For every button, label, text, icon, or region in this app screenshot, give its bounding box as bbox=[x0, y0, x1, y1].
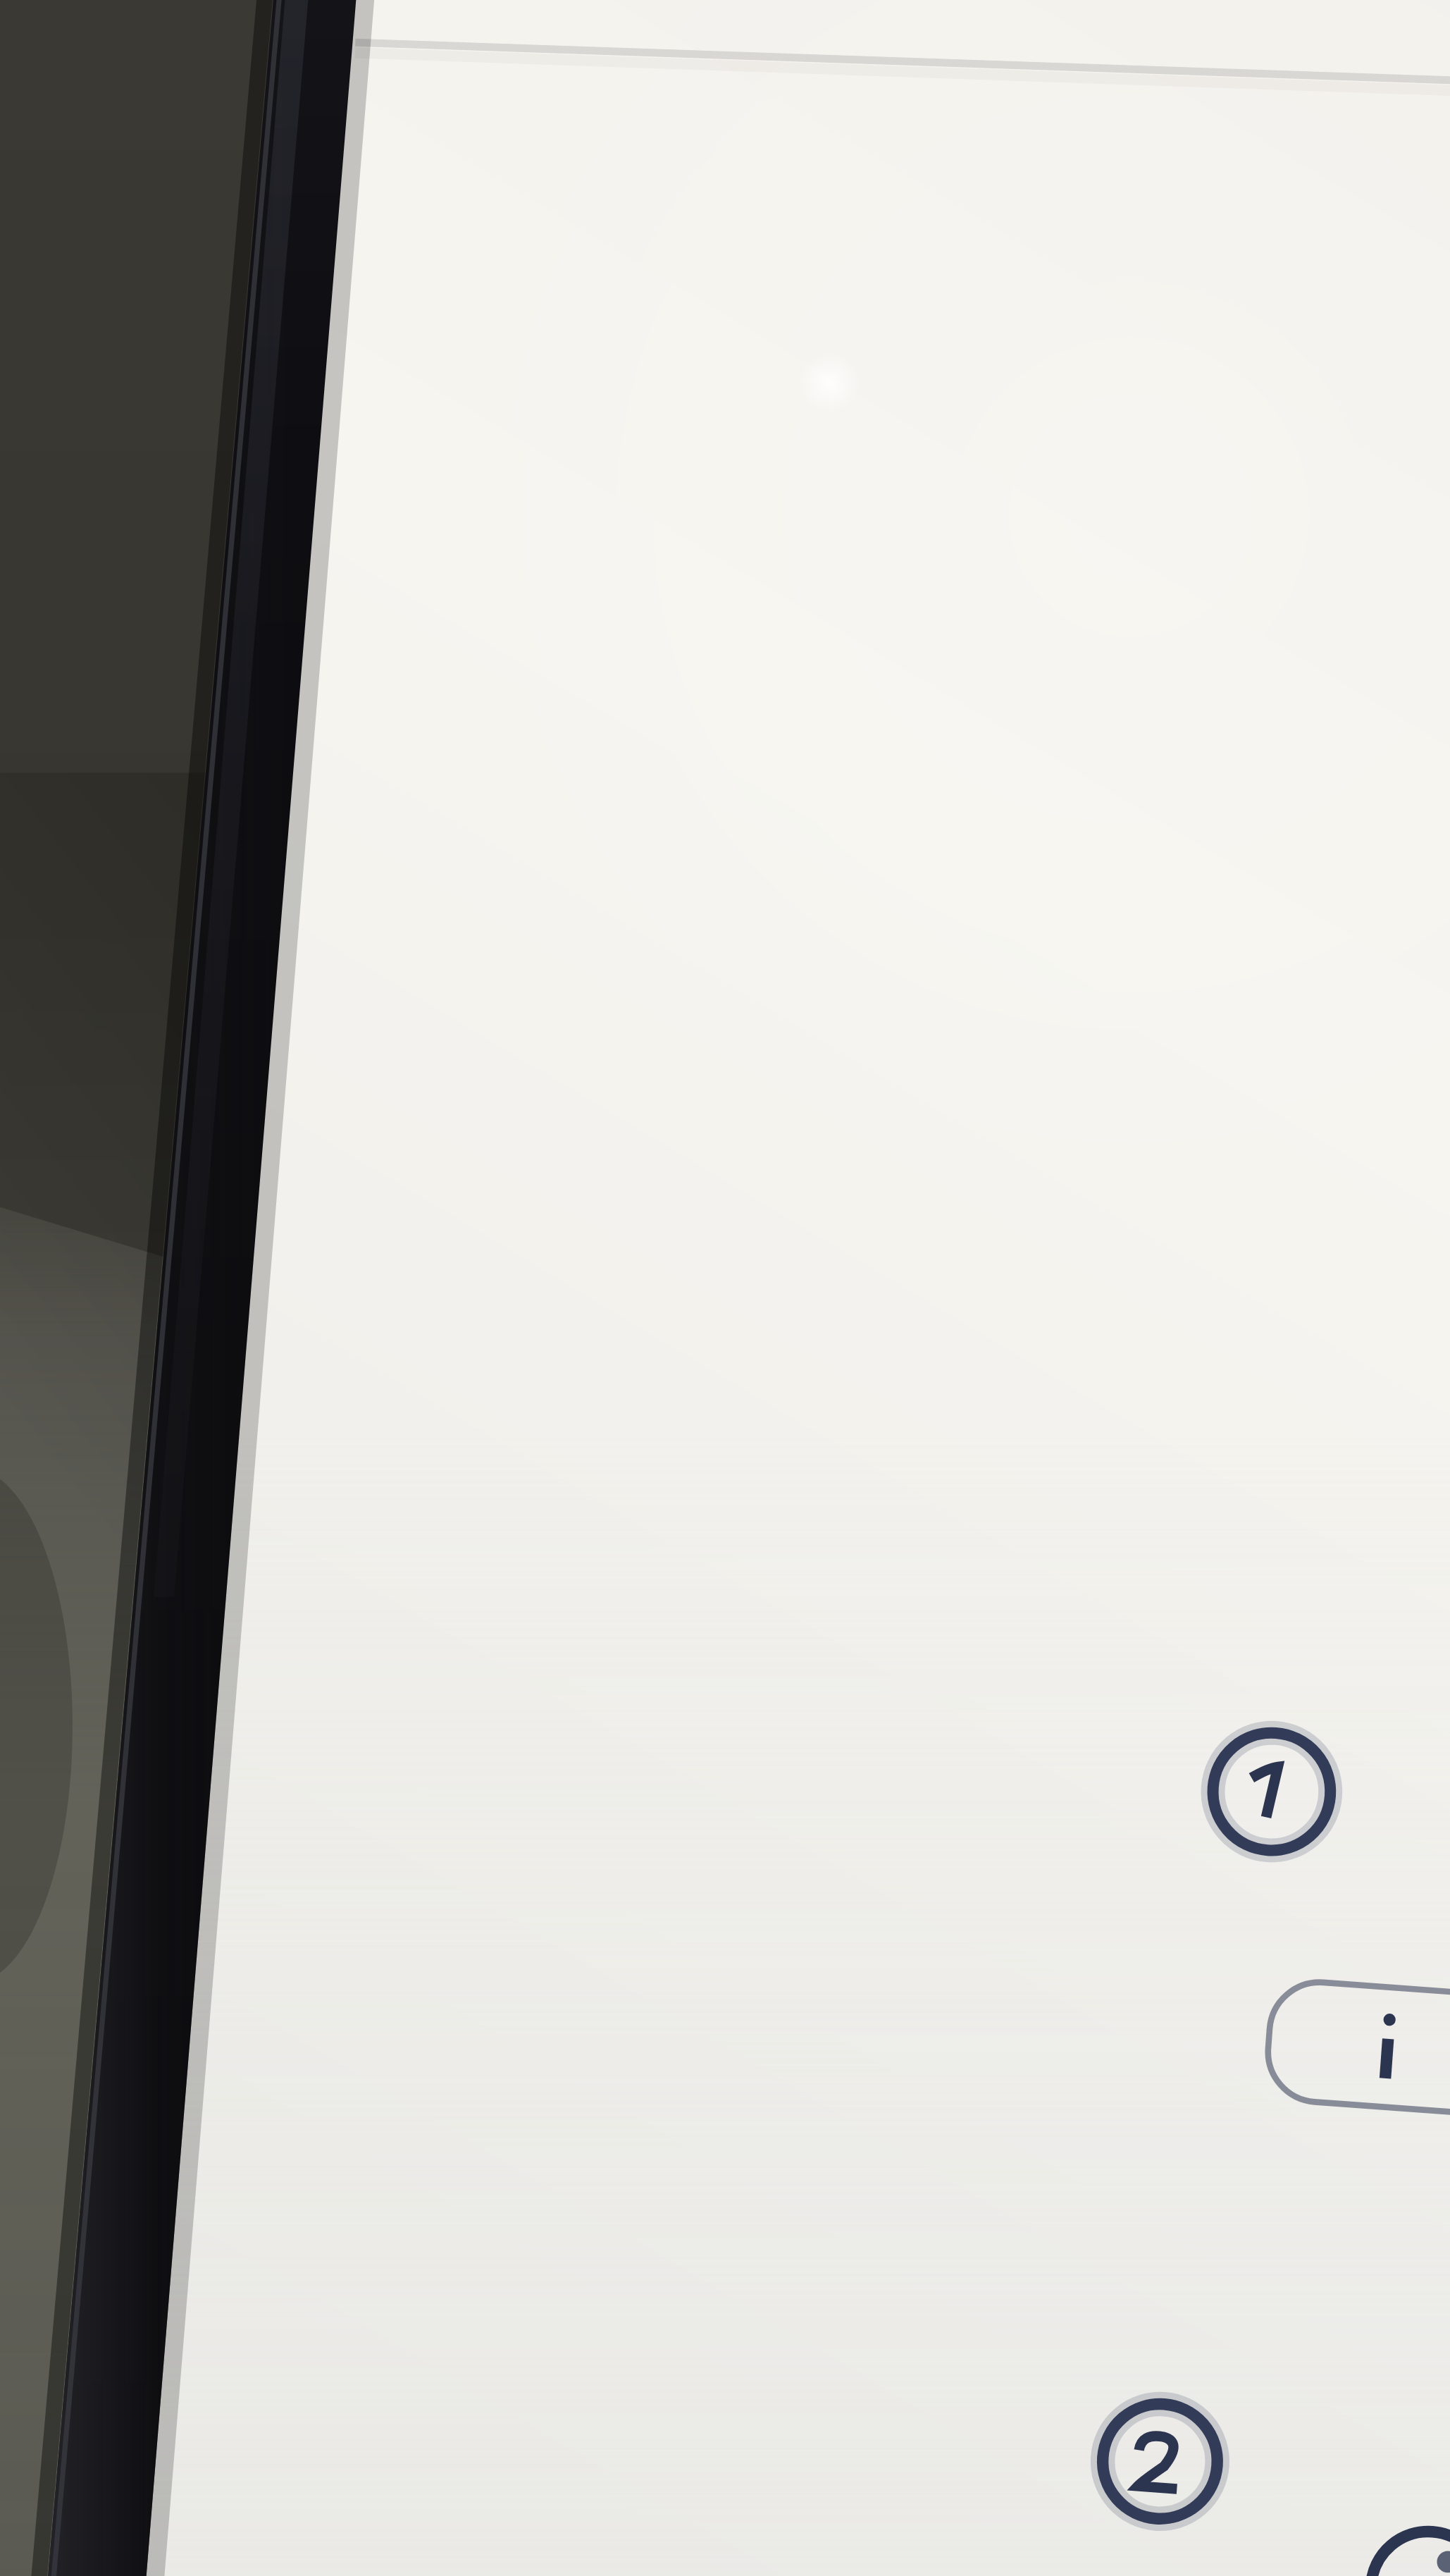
other: Device screen photographed at an angle bbox=[0, 0, 1450, 2576]
